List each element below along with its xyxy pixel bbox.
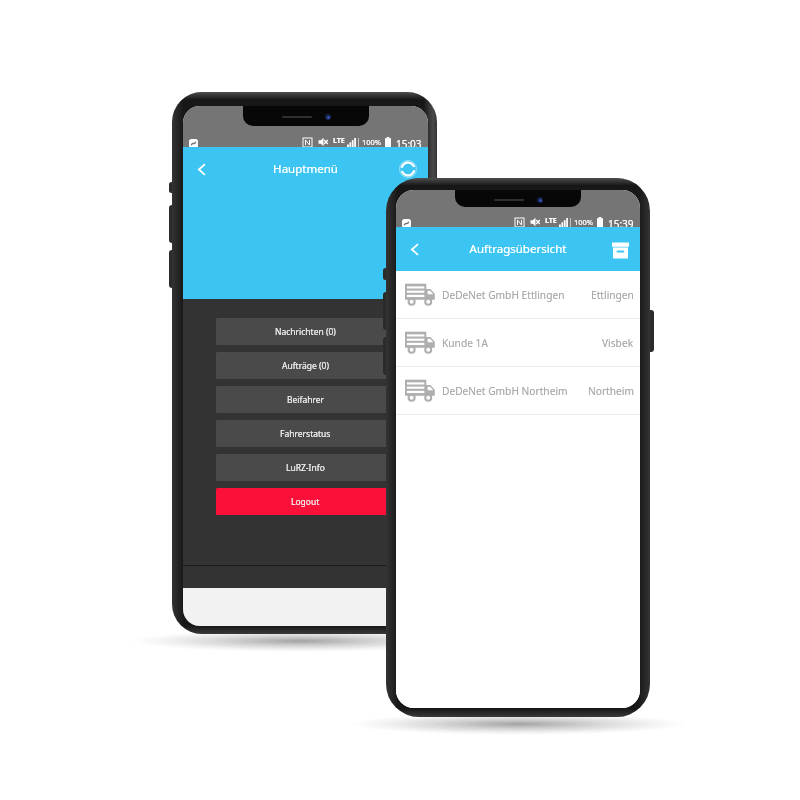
button[interactable]: LuRZ-Info	[216, 454, 395, 481]
button[interactable]: Kunde 1A	[396, 319, 640, 366]
button[interactable]: Aufträge (0)	[216, 352, 395, 379]
staticText: LTE	[333, 136, 345, 146]
button[interactable]: Fahrerstatus	[216, 420, 395, 447]
staticText: 15:03	[396, 137, 422, 148]
button[interactable]: Back	[396, 227, 432, 271]
staticText: 100%	[362, 137, 382, 147]
button[interactable]: Archive	[604, 227, 640, 271]
button[interactable]: Logout	[216, 488, 395, 515]
staticText: Logout	[291, 496, 320, 508]
staticText: Nachrichten (0)	[275, 326, 336, 338]
button[interactable]: Beifahrer	[216, 386, 395, 413]
button[interactable]: DeDeNet GmbH Northeim	[396, 367, 640, 414]
staticText: Beifahrer	[287, 394, 325, 406]
staticText: LTE	[545, 216, 557, 226]
staticText: DeDeNet GmbH Ettlingen	[442, 288, 565, 302]
staticText: Fahrerstatus	[280, 428, 331, 440]
staticText: Ettlingen	[591, 288, 634, 302]
staticText: Hauptmenü	[219, 161, 392, 177]
staticText: Aufträge (0)	[282, 360, 329, 372]
staticText: 15:39	[608, 217, 634, 228]
staticText: LuRZ-Info	[286, 462, 325, 474]
staticText: Kunde 1A	[442, 336, 488, 350]
staticText: Northeim	[588, 384, 634, 398]
button[interactable]: Back	[183, 147, 219, 191]
staticText: DeDeNet GmbH Northeim	[442, 384, 568, 398]
button[interactable]: Nachrichten (0)	[216, 318, 395, 345]
button[interactable]: Refresh	[392, 147, 428, 191]
staticText: Visbek	[602, 336, 634, 350]
staticText: 100%	[574, 217, 594, 227]
staticText: Auftragsübersicht	[432, 241, 604, 257]
button[interactable]: DeDeNet GmbH Ettlingen	[396, 271, 640, 318]
